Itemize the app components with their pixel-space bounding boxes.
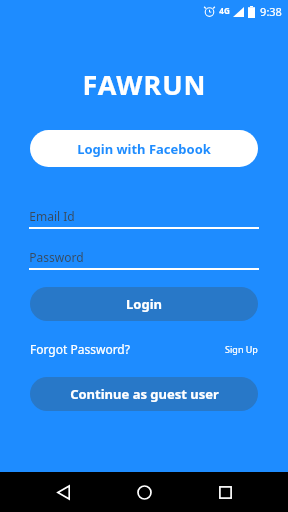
- button[interactable]: Login: [30, 287, 258, 321]
- staticText: Password: [29, 249, 84, 265]
- staticText: Login: [126, 295, 162, 313]
- staticText: Login with Facebook: [77, 140, 211, 158]
- staticText: Continue as guest user: [70, 385, 219, 403]
- staticText: Sign Up: [225, 343, 258, 355]
- button[interactable]: Back: [45, 474, 81, 510]
- staticText: FAWRUN: [82, 66, 207, 103]
- button[interactable]: Continue as guest user: [30, 377, 258, 411]
- staticText: 4G: [219, 5, 230, 16]
- button[interactable]: Recent apps: [207, 474, 243, 510]
- staticText: Email Id: [29, 208, 75, 224]
- staticText: Forgot Password?: [30, 341, 130, 357]
- button[interactable]: Password: [29, 246, 259, 270]
- button[interactable]: Sign Up: [225, 343, 258, 355]
- button[interactable]: Home: [126, 474, 162, 510]
- staticText: 9:38: [260, 4, 282, 19]
- button[interactable]: Email Id: [29, 205, 259, 229]
- button[interactable]: Login with Facebook: [30, 130, 258, 167]
- button[interactable]: Forgot Password?: [30, 341, 130, 357]
